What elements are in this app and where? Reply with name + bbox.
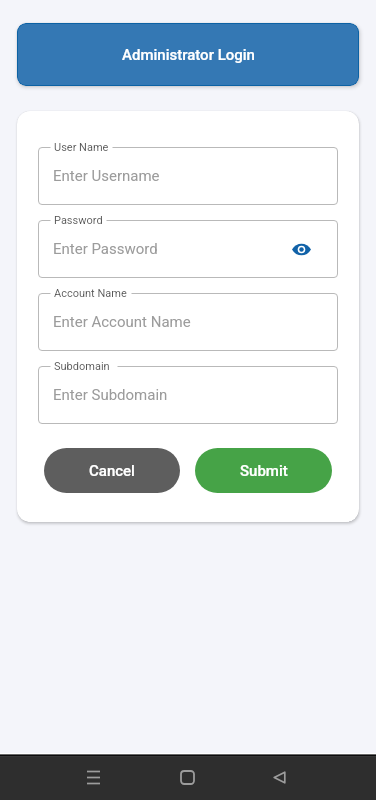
button[interactable]: Show password: [286, 234, 316, 264]
staticText: Cancel: [89, 462, 135, 480]
button[interactable]: Home: [165, 755, 209, 799]
button[interactable]: Recent apps: [71, 755, 115, 799]
staticText: Enter Password: [53, 240, 158, 258]
button[interactable]: User Name: [38, 147, 338, 205]
staticText: Enter Account Name: [53, 313, 191, 331]
staticText: Subdomain: [54, 360, 110, 373]
staticText: Account Name: [54, 287, 127, 300]
button[interactable]: Cancel: [44, 448, 180, 493]
staticText: User Name: [54, 141, 109, 154]
staticText: Submit: [240, 462, 288, 480]
button[interactable]: Account Name: [38, 293, 338, 351]
button[interactable]: Submit: [195, 448, 332, 493]
button[interactable]: Password: [38, 220, 338, 278]
button[interactable]: Subdomain: [38, 366, 338, 424]
button[interactable]: Administrator Login: [17, 23, 359, 86]
button[interactable]: Back: [257, 755, 301, 799]
staticText: Administrator Login: [122, 46, 255, 64]
staticText: Enter Subdomain: [53, 386, 168, 404]
staticText: Enter Username: [53, 167, 160, 185]
staticText: Password: [54, 214, 103, 227]
